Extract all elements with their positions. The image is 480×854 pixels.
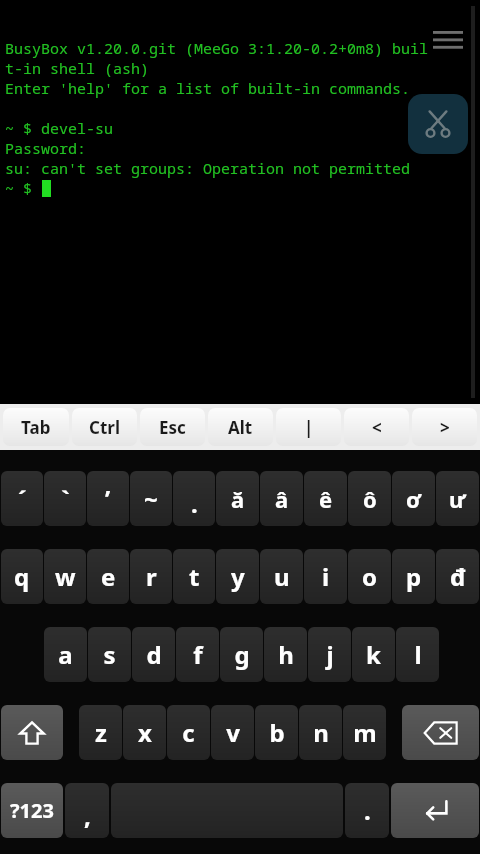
button[interactable]: ` bbox=[44, 471, 86, 526]
button[interactable]: Alt bbox=[208, 408, 273, 446]
staticText: w bbox=[55, 560, 76, 593]
staticText: x bbox=[138, 716, 152, 749]
staticText: q bbox=[14, 560, 30, 593]
staticText: e bbox=[101, 560, 116, 593]
staticText: ’ bbox=[105, 482, 111, 515]
button[interactable]: . bbox=[173, 471, 215, 526]
staticText: | bbox=[304, 416, 314, 439]
staticText: o bbox=[362, 560, 377, 593]
button[interactable]: k bbox=[352, 627, 395, 682]
button[interactable]: d bbox=[132, 627, 175, 682]
button[interactable]: Backspace bbox=[402, 705, 479, 760]
staticText: ´ bbox=[18, 482, 27, 515]
staticText: â bbox=[275, 484, 289, 514]
button[interactable]: t bbox=[173, 549, 215, 604]
button[interactable]: ´ bbox=[1, 471, 43, 526]
button[interactable]: ’ bbox=[87, 471, 129, 526]
button[interactable]: z bbox=[79, 705, 122, 760]
button[interactable]: h bbox=[264, 627, 307, 682]
button[interactable]: â bbox=[260, 471, 303, 526]
button[interactable]: ~ bbox=[130, 471, 172, 526]
staticText: p bbox=[406, 560, 422, 593]
staticText: . bbox=[364, 794, 371, 827]
button[interactable]: o bbox=[348, 549, 391, 604]
button[interactable]: f bbox=[176, 627, 219, 682]
button[interactable]: m bbox=[343, 705, 386, 760]
staticText: u bbox=[274, 560, 290, 593]
button[interactable]: l bbox=[396, 627, 439, 682]
button[interactable]: . bbox=[345, 783, 389, 838]
button[interactable]: r bbox=[130, 549, 172, 604]
staticText: Alt bbox=[228, 416, 253, 439]
staticText: f bbox=[193, 638, 203, 671]
staticText: ` bbox=[61, 482, 70, 515]
staticText: < bbox=[372, 416, 382, 439]
button[interactable]: g bbox=[220, 627, 263, 682]
staticText: c bbox=[182, 716, 195, 749]
button[interactable]: < bbox=[344, 408, 409, 446]
button[interactable]: w bbox=[44, 549, 86, 604]
staticText: Password: bbox=[5, 138, 87, 158]
staticText: t-in shell (ash) bbox=[5, 58, 150, 78]
button[interactable]: j bbox=[308, 627, 351, 682]
button[interactable]: s bbox=[88, 627, 131, 682]
button[interactable]: Menu bbox=[432, 30, 464, 52]
staticText: Esc bbox=[159, 416, 186, 439]
button[interactable]: p bbox=[392, 549, 435, 604]
staticText: ă bbox=[231, 484, 245, 514]
button[interactable]: ơ bbox=[392, 471, 435, 526]
staticText: > bbox=[440, 416, 450, 439]
staticText: r bbox=[146, 560, 157, 593]
staticText: đ bbox=[450, 560, 466, 593]
button[interactable]: e bbox=[87, 549, 129, 604]
staticText: Tab bbox=[21, 416, 51, 439]
staticText: b bbox=[269, 716, 285, 749]
button[interactable]: x bbox=[123, 705, 166, 760]
staticText: h bbox=[278, 638, 294, 671]
button[interactable]: ă bbox=[216, 471, 259, 526]
staticText: Ctrl bbox=[89, 416, 120, 439]
button[interactable]: ô bbox=[348, 471, 391, 526]
staticText: z bbox=[95, 716, 107, 749]
button[interactable]: > bbox=[412, 408, 477, 446]
staticText: a bbox=[58, 638, 73, 671]
staticText: d bbox=[146, 638, 162, 671]
button[interactable]: a bbox=[44, 627, 87, 682]
button[interactable]: c bbox=[167, 705, 210, 760]
staticText: ơ bbox=[406, 484, 421, 514]
button[interactable]: Copy selection bbox=[408, 94, 468, 154]
button[interactable]: i bbox=[304, 549, 347, 604]
staticText: ~ bbox=[144, 482, 158, 515]
button[interactable]: , bbox=[65, 783, 109, 838]
button[interactable]: Enter bbox=[391, 783, 479, 838]
staticText: Enter 'help' for a list of built-in comm… bbox=[5, 78, 411, 98]
staticText: . bbox=[191, 487, 198, 520]
button[interactable]: | bbox=[276, 408, 341, 446]
staticText: n bbox=[313, 716, 329, 749]
staticText: g bbox=[234, 638, 250, 671]
button[interactable]: n bbox=[299, 705, 342, 760]
button[interactable]: đ bbox=[436, 549, 479, 604]
button[interactable]: Space bbox=[111, 783, 343, 838]
button[interactable]: Shift bbox=[1, 705, 63, 760]
staticText: ?123 bbox=[10, 797, 54, 824]
button[interactable]: y bbox=[216, 549, 259, 604]
button[interactable]: q bbox=[1, 549, 43, 604]
staticText: s bbox=[103, 638, 116, 671]
staticText: ư bbox=[449, 484, 466, 514]
button[interactable]: Ctrl bbox=[72, 408, 137, 446]
button[interactable]: b bbox=[255, 705, 298, 760]
button[interactable]: u bbox=[260, 549, 303, 604]
button[interactable]: Tab bbox=[3, 408, 69, 446]
button[interactable]: ?123 bbox=[1, 783, 63, 838]
staticText: BusyBox v1.20.0.git (MeeGo 3:1.20-0.2+0m… bbox=[5, 38, 429, 58]
staticText: su: can't set groups: Operation not perm… bbox=[5, 158, 411, 178]
staticText: i bbox=[322, 560, 330, 593]
staticText: ê bbox=[319, 484, 333, 514]
staticText: y bbox=[231, 560, 245, 593]
button[interactable]: v bbox=[211, 705, 254, 760]
staticText: ~ $ bbox=[5, 178, 42, 198]
button[interactable]: Esc bbox=[140, 408, 205, 446]
button[interactable]: ư bbox=[436, 471, 479, 526]
button[interactable]: ê bbox=[304, 471, 347, 526]
